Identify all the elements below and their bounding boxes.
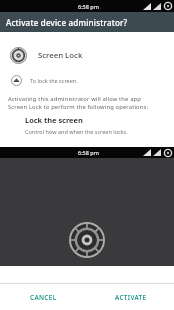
staticText: 6:58 pm: [78, 149, 99, 156]
staticText: Lock the screen: [25, 115, 83, 125]
staticText: To lock the screen.: [30, 77, 78, 84]
staticText: Control how and when the screen locks.: [25, 128, 128, 135]
button[interactable]: Screen Lock: [0, 46, 174, 64]
staticText: Activate device administrator?: [6, 17, 128, 28]
staticText: 6:58 pm: [78, 3, 99, 10]
button[interactable]: CANCEL: [0, 284, 87, 310]
button[interactable]: ACTIVATE: [87, 284, 174, 310]
staticText: Screen Lock: [38, 50, 83, 61]
staticText: Activating this administrator will allow…: [8, 95, 149, 110]
staticText: CANCEL: [30, 293, 57, 302]
button[interactable]: To lock the screen.: [0, 74, 174, 87]
staticText: ACTIVATE: [115, 293, 147, 302]
